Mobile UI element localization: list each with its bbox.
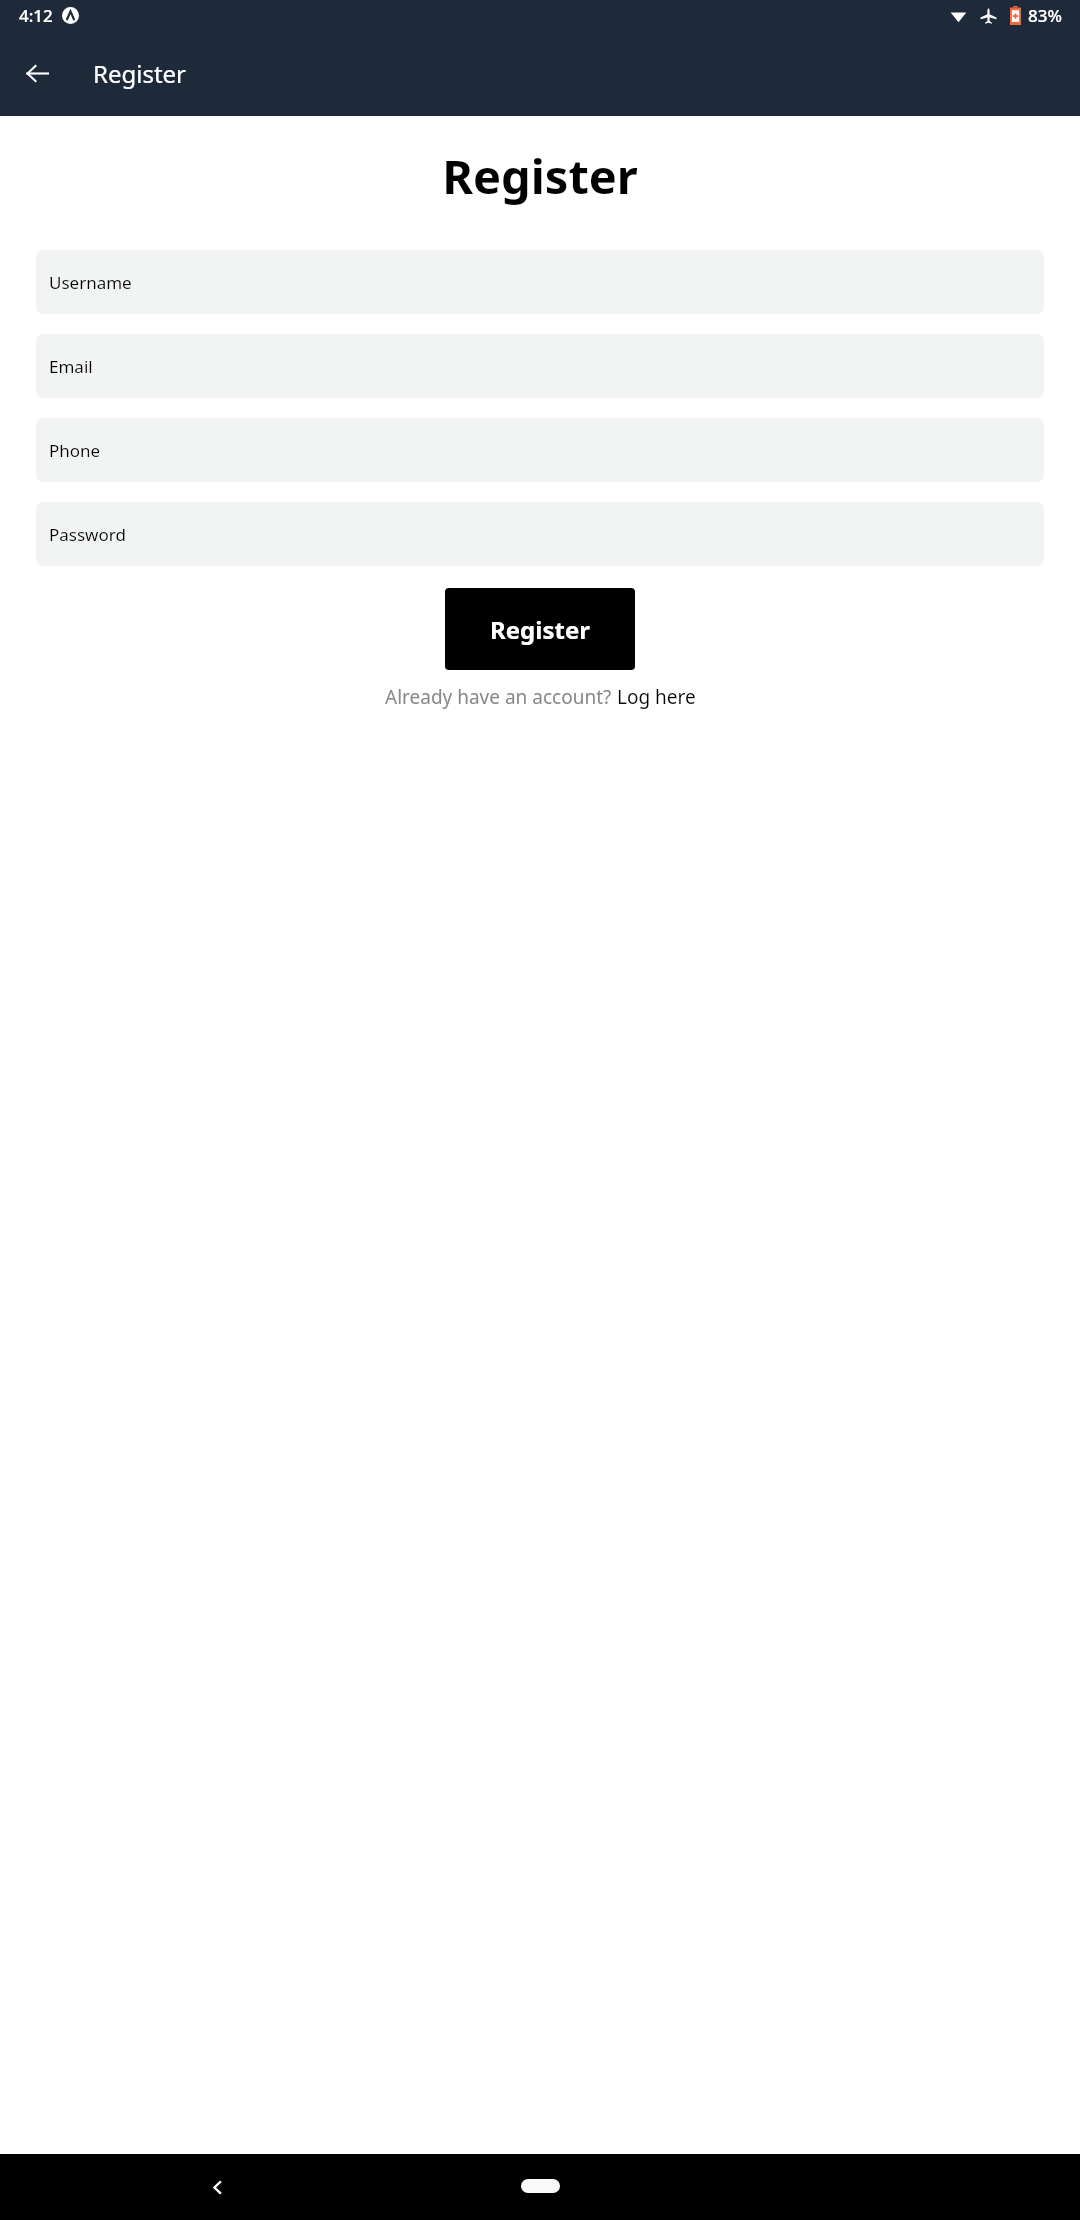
- staticText: Phone: [49, 439, 101, 462]
- staticText: Already have an account?: [385, 684, 617, 710]
- button[interactable]: Password: [36, 502, 1044, 566]
- button[interactable]: Back: [13, 49, 61, 97]
- button[interactable]: Email: [36, 334, 1044, 398]
- staticText: Email: [49, 355, 93, 378]
- staticText: Password: [49, 523, 126, 546]
- button[interactable]: Log here: [617, 684, 696, 710]
- staticText: Log here: [617, 684, 696, 710]
- button[interactable]: Register: [445, 588, 635, 670]
- staticText: 4:12: [19, 4, 53, 27]
- staticText: Register: [490, 613, 590, 646]
- staticText: Register: [442, 144, 638, 208]
- staticText: 83%: [1028, 4, 1062, 27]
- button[interactable]: Back: [196, 2166, 238, 2208]
- button[interactable]: Phone: [36, 418, 1044, 482]
- button[interactable]: Home: [521, 2179, 560, 2193]
- staticText: Username: [49, 271, 132, 294]
- staticText: Register: [93, 57, 187, 90]
- button[interactable]: Username: [36, 250, 1044, 314]
